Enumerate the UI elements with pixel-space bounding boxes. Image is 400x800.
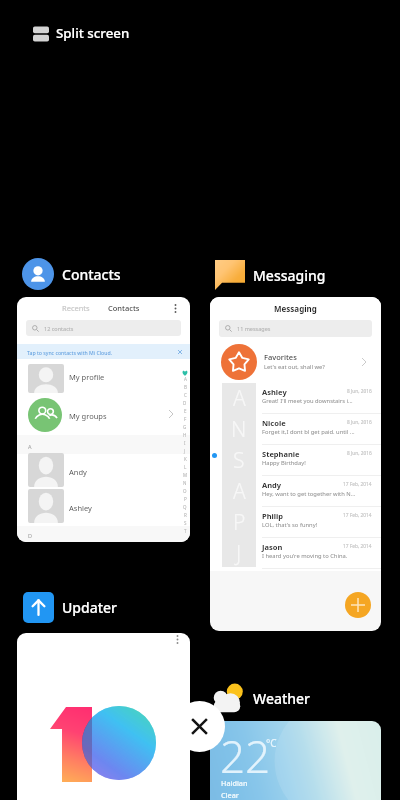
staticText: 8 Jun, 2016 [347, 450, 372, 457]
button[interactable]: S [210, 445, 381, 476]
button[interactable] [17, 633, 190, 800]
staticText: Contacts [62, 265, 121, 284]
button[interactable]: A [210, 383, 381, 414]
staticText: R [184, 512, 187, 518]
staticText: F [184, 416, 187, 422]
staticText: My profile [69, 372, 105, 382]
button[interactable]: P [210, 507, 381, 538]
staticText: 12 contacts [44, 325, 74, 332]
button[interactable]: Recents [17, 297, 190, 542]
staticText: J [184, 448, 186, 454]
staticText: LOL, that's so funny! [262, 521, 318, 529]
staticText: N [183, 480, 187, 486]
staticText: 17 Feb, 2014 [343, 512, 372, 519]
staticText: C [184, 392, 187, 398]
staticText: L [184, 464, 187, 470]
staticText: D [28, 532, 33, 539]
staticText: D [183, 400, 187, 406]
staticText: A [233, 477, 246, 506]
button[interactable]: My groups [17, 396, 190, 434]
staticText: Forget it,I dont bl get paid. until ... [262, 428, 355, 436]
button[interactable]: Weather [211, 681, 311, 715]
staticText: A [28, 443, 32, 450]
staticText: Stephanie [262, 449, 300, 459]
staticText: Let's eat out, shall we? [264, 363, 325, 371]
staticText: 8 Jun, 2016 [347, 388, 372, 395]
staticText: E [184, 408, 187, 414]
staticText: N [231, 415, 247, 444]
button[interactable]: N [210, 414, 381, 445]
button[interactable]: Split screen [33, 24, 130, 42]
button[interactable]: My profile [17, 359, 190, 393]
staticText: H [183, 432, 187, 438]
staticText: Weather [253, 689, 311, 708]
button[interactable]: J [210, 538, 381, 569]
staticText: My groups [69, 411, 107, 421]
staticText: B [184, 384, 187, 390]
staticText: G [183, 424, 187, 430]
button[interactable]: Updater [23, 592, 118, 623]
staticText: Favorites [264, 352, 297, 362]
staticText: 22 [220, 726, 271, 786]
button[interactable]: Contacts [22, 258, 121, 290]
staticText: 8 Jun, 2016 [347, 419, 372, 426]
staticText: Messaging [274, 303, 317, 314]
staticText: Updater [62, 598, 118, 617]
staticText: Contacts [108, 303, 140, 313]
button[interactable]: 12 contacts [26, 320, 181, 336]
staticText: A [233, 384, 246, 413]
staticText: 11 messages [237, 325, 271, 332]
staticText: 17 Feb, 2014 [343, 481, 372, 488]
staticText: Philip [262, 511, 283, 521]
button[interactable]: Favorites [210, 341, 381, 383]
staticText: P [233, 508, 246, 537]
staticText: 17 Feb, 2014 [343, 543, 372, 550]
staticText: P [184, 496, 187, 502]
staticText: Haidian [221, 778, 248, 788]
staticText: S [233, 446, 245, 475]
button[interactable]: Tap to sync contacts with Mi Cloud. [17, 344, 190, 359]
button[interactable]: 11 messages [219, 320, 372, 337]
staticText: J [236, 539, 242, 568]
staticText: S [184, 520, 187, 526]
button[interactable]: Messaging [210, 297, 381, 631]
button[interactable]: A [210, 476, 381, 507]
staticText: Recents [62, 303, 90, 313]
button[interactable]: New message [345, 592, 371, 618]
staticText: °C [266, 736, 277, 750]
staticText: T [184, 528, 187, 534]
staticText: Messaging [253, 266, 326, 285]
staticText: Andy [262, 480, 282, 490]
staticText: Split screen [56, 24, 130, 42]
staticText: I [184, 440, 186, 446]
staticText: Q [183, 504, 187, 510]
button[interactable]: Andy [17, 453, 190, 488]
staticText: Andy [69, 467, 87, 477]
staticText: Hey, want to get together with N... [262, 490, 356, 498]
staticText: K [184, 456, 187, 462]
button[interactable]: 22 [210, 721, 381, 800]
staticText: Ashley [69, 503, 92, 513]
staticText: Ashley [262, 387, 287, 397]
staticText: Tap to sync contacts with Mi Cloud. [27, 349, 113, 356]
staticText: Great! I'll meet you downstairs i... [262, 397, 353, 405]
staticText: I heard you're moving to China. [262, 552, 348, 560]
staticText: A [184, 376, 187, 382]
staticText: Jason [262, 542, 283, 552]
staticText: M [183, 472, 188, 478]
button[interactable]: Close [174, 701, 225, 752]
button[interactable]: Ashley [17, 489, 190, 524]
button[interactable]: Messaging [215, 260, 326, 290]
staticText: Happy Birthday! [262, 459, 306, 467]
staticText: Clear [221, 790, 239, 800]
staticText: Nicole [262, 418, 286, 428]
staticText: O [183, 488, 187, 494]
